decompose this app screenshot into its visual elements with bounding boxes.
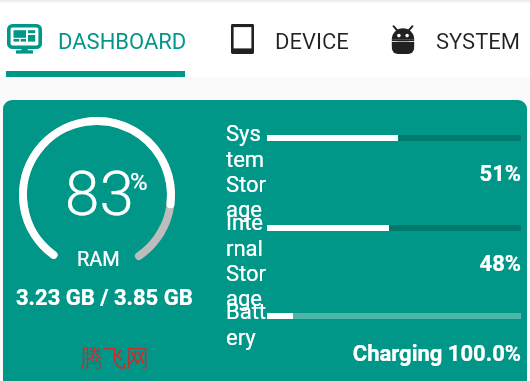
staticText: % <box>130 168 148 196</box>
staticText: 83 <box>65 157 134 230</box>
staticText: 3.23 GB / 3.85 GB <box>16 285 193 311</box>
staticText: DASHBOARD <box>58 29 187 55</box>
staticText: Charging 100.0% <box>3 341 521 367</box>
other: System <box>389 24 417 54</box>
staticText: 腾飞网 <box>80 344 149 373</box>
other: Dashboard <box>7 24 42 54</box>
staticText: DEVICE <box>275 29 349 55</box>
staticText: Batt ery <box>226 299 276 350</box>
button[interactable]: System <box>356 0 530 72</box>
staticText: 51% <box>3 161 521 187</box>
staticText: Sys tem Stor age <box>226 121 276 222</box>
button[interactable]: Dashboard <box>0 0 191 72</box>
staticText: RAM <box>77 247 120 270</box>
other: Device <box>231 24 254 54</box>
staticText: 48% <box>3 251 521 277</box>
staticText: Inte rnal Stor age <box>226 210 276 311</box>
staticText: SYSTEM <box>436 29 521 55</box>
button[interactable]: Device <box>191 0 356 72</box>
